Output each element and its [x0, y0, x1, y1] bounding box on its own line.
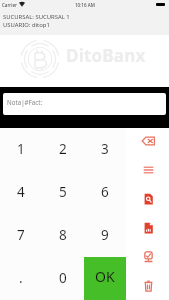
staticText: OK [95, 267, 115, 286]
button[interactable]: 6 [84, 171, 126, 214]
staticText: 1 [17, 140, 25, 158]
button[interactable]: OK [84, 257, 126, 300]
staticText: 0 [59, 269, 67, 287]
staticText: Carrier [2, 2, 17, 8]
button[interactable]: Menu [128, 155, 169, 184]
staticText: 4 [17, 183, 25, 201]
staticText: 2 [59, 140, 67, 158]
button[interactable]: 8 [42, 214, 84, 257]
button[interactable]: Validate [128, 242, 169, 271]
staticText: USUARIO: ditop1 [3, 21, 50, 29]
button[interactable]: 1 [0, 128, 42, 171]
button[interactable]: Delete [128, 271, 169, 300]
button[interactable]: 7 [0, 214, 42, 257]
staticText: SUCURSAL: SUCURSAL 1 [3, 13, 70, 21]
button[interactable]: Nota|#Fact: [3, 93, 166, 115]
staticText: 9 [101, 226, 109, 244]
staticText: 5 [59, 183, 67, 201]
button[interactable]: Search document [128, 184, 169, 213]
staticText: 10:16 AM [75, 2, 95, 8]
staticText: 3 [101, 140, 109, 158]
staticText: 8 [59, 226, 67, 244]
button[interactable]: PDF [128, 213, 169, 242]
staticText: 6 [101, 183, 109, 201]
button[interactable]: 4 [0, 171, 42, 214]
staticText: 7 [17, 226, 25, 244]
button[interactable]: 5 [42, 171, 84, 214]
staticText: Nota|#Fact: [7, 98, 43, 106]
button[interactable]: Backspace [128, 127, 169, 155]
button[interactable]: 0 [42, 257, 84, 300]
button[interactable]: 2 [42, 128, 84, 171]
button[interactable]: . [0, 257, 42, 300]
staticText: DitoBanx [66, 44, 146, 67]
button[interactable]: 9 [84, 214, 126, 257]
button[interactable]: 3 [84, 128, 126, 171]
staticText: . [19, 269, 23, 287]
